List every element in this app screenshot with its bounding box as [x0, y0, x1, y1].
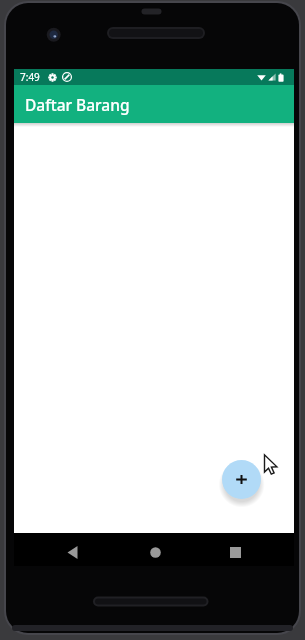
- staticText: 7:49: [20, 70, 40, 84]
- button[interactable]: [60, 540, 84, 564]
- button[interactable]: [222, 460, 261, 499]
- staticText: Daftar Barang: [25, 94, 130, 115]
- button[interactable]: [223, 540, 247, 564]
- button[interactable]: [143, 540, 167, 564]
